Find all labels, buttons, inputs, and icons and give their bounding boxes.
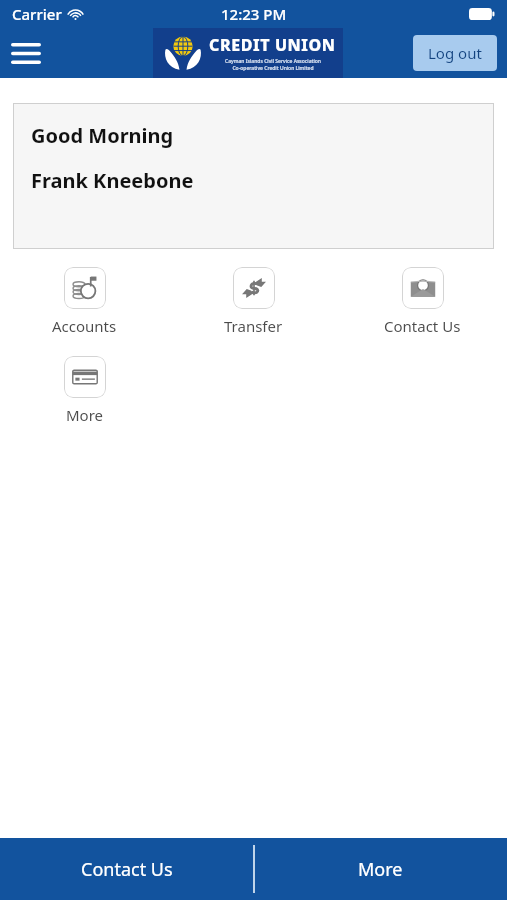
staticText: CREDIT UNION: [209, 34, 336, 56]
button[interactable]: Good Morning: [13, 103, 494, 249]
staticText: Accounts: [52, 316, 117, 336]
staticText: Carrier: [12, 4, 62, 24]
button[interactable]: Transfer: [169, 265, 338, 338]
button[interactable]: Menu: [4, 31, 48, 75]
staticText: Contact Us: [81, 857, 173, 882]
staticText: Transfer: [224, 316, 283, 336]
button[interactable]: More: [0, 354, 169, 427]
staticText: Log out: [428, 43, 482, 63]
staticText: Frank Kneebone: [31, 167, 194, 194]
staticText: Cayman Islands Civil Service Association: [225, 58, 321, 65]
button[interactable]: Contact Us: [338, 265, 507, 338]
staticText: Good Morning: [31, 122, 174, 149]
button[interactable]: More: [253, 838, 507, 900]
button[interactable]: Accounts: [0, 265, 169, 338]
staticText: More: [358, 857, 403, 882]
staticText: Contact Us: [384, 316, 461, 336]
staticText: More: [66, 405, 104, 425]
staticText: 12:23 PM: [221, 4, 287, 24]
button[interactable]: Log out: [413, 35, 497, 71]
button[interactable]: Contact Us: [0, 838, 253, 900]
button[interactable]: Credit Union logo: [153, 28, 343, 78]
staticText: Co-operative Credit Union Limited: [232, 65, 314, 72]
